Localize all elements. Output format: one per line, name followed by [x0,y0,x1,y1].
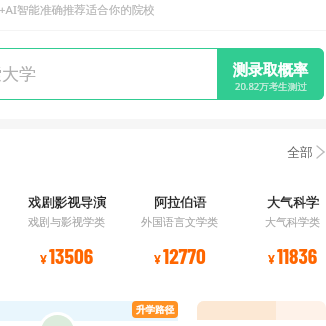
button[interactable]: 戏剧影视导演 [10,194,123,268]
button[interactable]: 搜索大学 [0,48,217,100]
staticText: 戏剧影视导演 [28,194,106,210]
staticText: 阿拉伯语 [154,194,206,210]
staticText: 搜索大学 [0,64,36,85]
staticText: ¥ [154,251,161,267]
staticText: 戏剧与影视学类 [28,215,105,229]
button[interactable]: 升学路径 [132,301,178,318]
button[interactable]: 阿拉伯语 [123,194,236,268]
staticText: 11836 [277,242,318,268]
staticText: 全部 [287,144,313,160]
staticText: 大气科学 [267,194,319,210]
button[interactable]: 测录取概率 [217,48,324,100]
staticText: 测录取概率 [233,61,308,80]
button[interactable]: 全部 [287,144,324,160]
staticText: 12770 [163,242,206,268]
staticText: 升学路径 [136,304,174,316]
button[interactable] [0,301,178,321]
staticText: ¥ [40,251,47,267]
button[interactable]: Home [41,315,74,326]
staticText: 13506 [49,242,94,268]
staticText: 外国语言文学类 [141,215,218,229]
staticText: 20.82万考生测过 [235,80,307,93]
staticText: ¥ [268,251,275,267]
button[interactable]: 大气科学 [236,194,326,268]
button[interactable] [197,301,326,320]
staticText: 大气科学类 [265,215,320,229]
staticText: +AI智能准确推荐适合你的院校 [0,2,155,18]
